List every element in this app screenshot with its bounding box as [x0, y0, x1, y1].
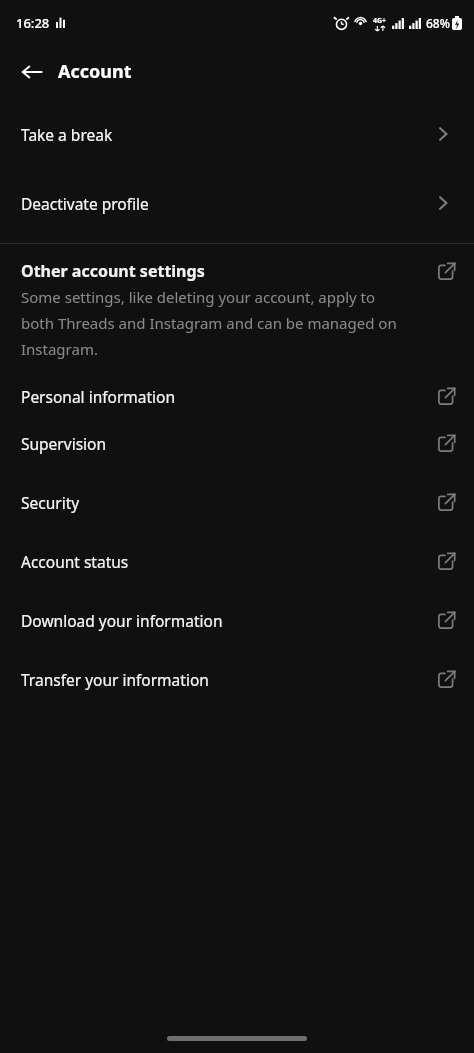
staticText: Account status: [21, 551, 437, 572]
button[interactable]: Supervision: [0, 414, 474, 473]
button[interactable]: Personal information: [0, 378, 474, 414]
button[interactable]: Other account settings: [0, 260, 474, 360]
staticText: Transfer your information: [21, 669, 437, 690]
button[interactable]: Transfer your information: [0, 650, 474, 709]
staticText: 68%: [426, 15, 450, 31]
staticText: Deactivate profile: [21, 193, 434, 214]
staticText: Personal information: [21, 386, 437, 407]
staticText: Security: [21, 492, 437, 513]
staticText: 16:28: [16, 14, 50, 32]
staticText: Supervision: [21, 433, 437, 454]
button[interactable]: Download your information: [0, 591, 474, 650]
staticText: Account: [58, 59, 132, 84]
button[interactable]: Back: [10, 50, 54, 94]
button[interactable]: Take a break: [0, 110, 474, 158]
staticText: Take a break: [21, 124, 434, 145]
button[interactable]: Security: [0, 473, 474, 532]
button[interactable]: Account status: [0, 532, 474, 591]
staticText: Other account settings: [21, 260, 205, 282]
staticText: 4G+: [373, 16, 387, 26]
staticText: Download your information: [21, 610, 437, 631]
staticText: Some settings, like deleting your accoun…: [21, 287, 399, 360]
button[interactable]: Deactivate profile: [0, 179, 474, 227]
